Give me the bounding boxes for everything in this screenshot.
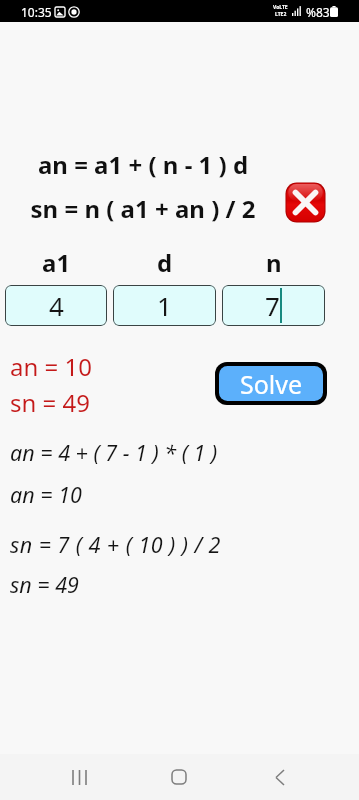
staticText: an = a1 + ( n - 1 ) d bbox=[0, 148, 286, 181]
button[interactable]: 1 bbox=[113, 285, 216, 326]
staticText: 1 bbox=[157, 288, 172, 323]
staticText: LTE2 bbox=[275, 11, 287, 18]
staticText: 10:35 bbox=[21, 4, 52, 20]
staticText: an = 10 bbox=[10, 350, 92, 383]
button[interactable]: 7 bbox=[222, 285, 325, 326]
staticText: an = 10 bbox=[10, 480, 82, 509]
staticText: sn = n ( a1 + an ) / 2 bbox=[0, 192, 286, 225]
staticText: Solve bbox=[240, 367, 303, 401]
staticText: d bbox=[157, 246, 173, 279]
staticText: sn = 49 bbox=[10, 386, 90, 419]
staticText: n bbox=[266, 246, 282, 279]
staticText: a1 bbox=[42, 246, 71, 279]
staticText: 7 bbox=[265, 288, 280, 323]
button[interactable]: Recents bbox=[55, 754, 103, 800]
staticText: an = 4 + ( 7 - 1 ) * ( 1 ) bbox=[10, 438, 218, 467]
button[interactable]: Home bbox=[155, 754, 203, 800]
staticText: sn = 7 ( 4 + ( 10 ) ) / 2 bbox=[10, 530, 221, 559]
button[interactable]: 4 bbox=[5, 285, 107, 326]
button[interactable]: Solve bbox=[215, 362, 327, 405]
staticText: VoLTE bbox=[273, 4, 288, 11]
staticText: 4 bbox=[49, 288, 64, 323]
button[interactable]: Back bbox=[256, 754, 304, 800]
button[interactable]: Clear bbox=[283, 180, 328, 225]
staticText: %83 bbox=[306, 4, 330, 20]
staticText: sn = 49 bbox=[10, 570, 79, 599]
